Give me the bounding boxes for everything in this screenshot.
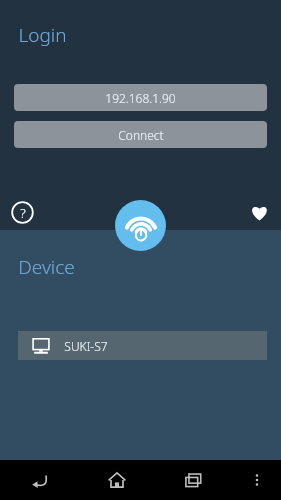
staticText: 192.168.1.90 bbox=[105, 90, 176, 106]
button[interactable]: Recent apps bbox=[155, 460, 232, 500]
staticText: Connect bbox=[118, 127, 164, 143]
staticText: Login bbox=[18, 22, 67, 48]
staticText: Device bbox=[18, 254, 75, 280]
button[interactable]: Connect bbox=[14, 121, 267, 148]
button[interactable]: SUKI-S7 bbox=[18, 331, 267, 360]
staticText: SUKI-S7 bbox=[64, 338, 108, 354]
button[interactable]: Help bbox=[9, 199, 36, 226]
button[interactable]: Home bbox=[78, 460, 155, 500]
button[interactable]: Connect power bbox=[115, 200, 166, 251]
button[interactable]: More options bbox=[232, 460, 281, 500]
staticText: ? bbox=[20, 204, 26, 222]
button[interactable]: Back bbox=[0, 460, 78, 500]
button[interactable]: 192.168.1.90 bbox=[14, 84, 267, 111]
button[interactable]: Favorite bbox=[246, 199, 273, 226]
